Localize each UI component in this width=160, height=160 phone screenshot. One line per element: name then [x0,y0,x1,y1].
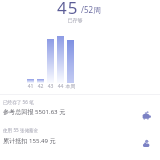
staticText: 使用 55 张储蓄金 [3,127,39,133]
staticText: 已经存了 56 笔 [3,99,34,105]
staticText: 累计抵扣 155.49 元 [3,136,56,144]
button[interactable]: 储蓄罐 [141,110,152,121]
staticText: 本周 [64,83,77,89]
staticText: 43 [44,83,57,90]
staticText: 已存够 [60,17,90,23]
staticText: 45 [57,0,79,19]
staticText: 参考总回报 5501.63 元 [3,107,66,115]
staticText: /52周 [81,4,102,15]
button[interactable]: 储蓄金 [141,138,152,149]
staticText: 41 [24,83,37,90]
staticText: 44 [54,83,67,90]
staticText: 42 [34,83,47,90]
